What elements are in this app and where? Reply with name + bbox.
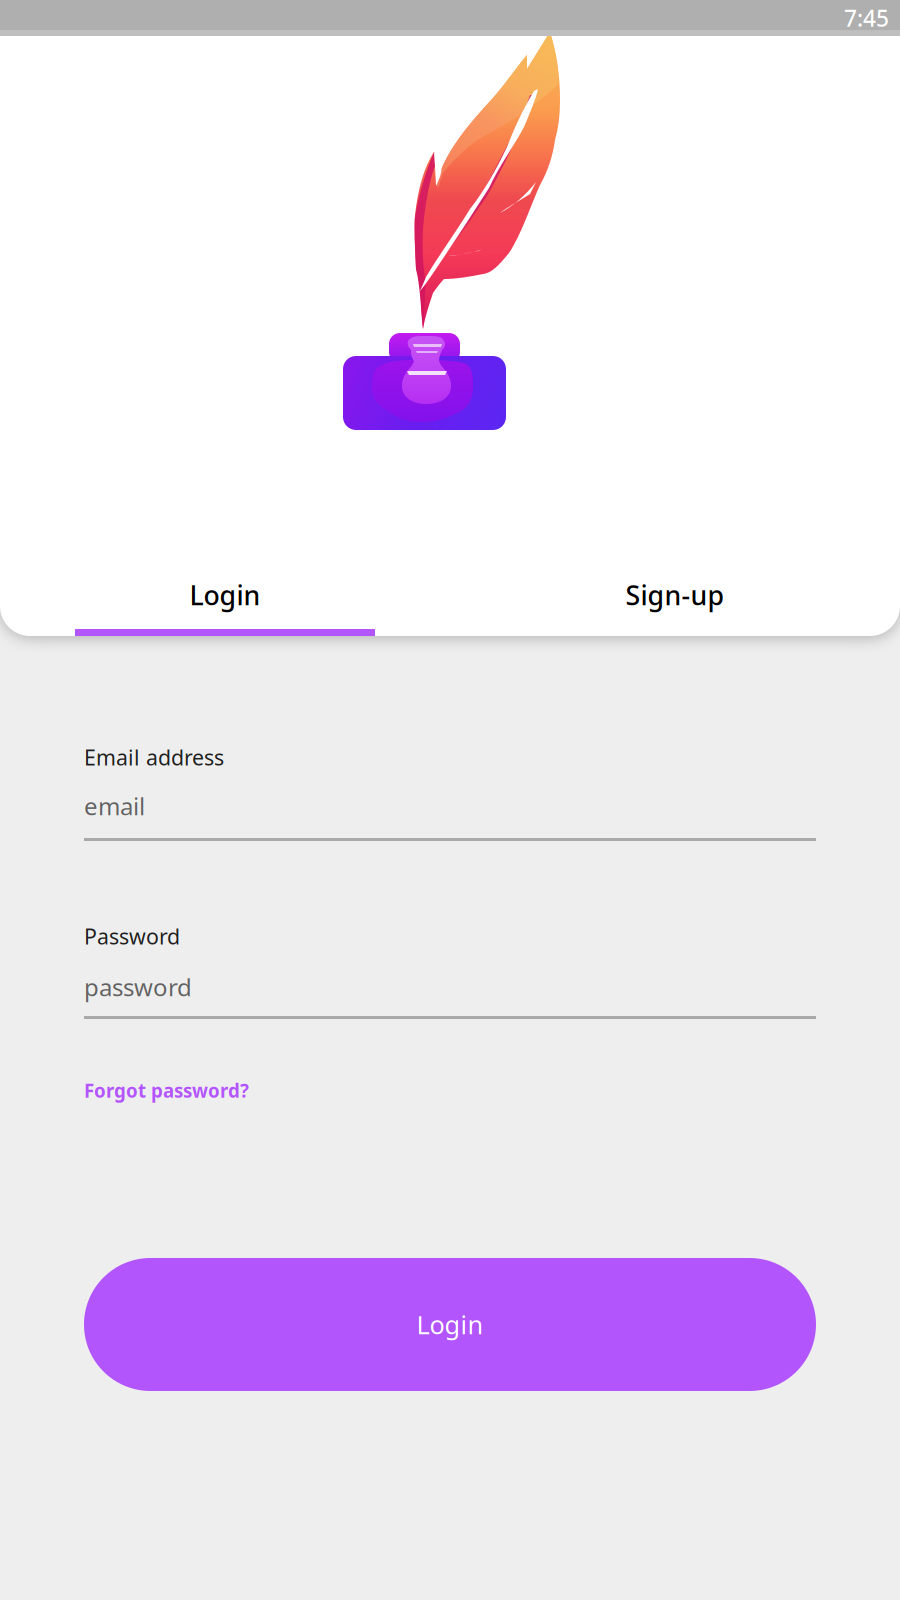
button[interactable]: Login <box>84 1258 816 1391</box>
staticText: 7:45 <box>844 3 889 33</box>
button[interactable]: Sign-up <box>450 516 900 636</box>
staticText: password <box>84 971 192 1003</box>
staticText: Email address <box>84 743 224 771</box>
button[interactable]: Forgot password? <box>84 1078 249 1103</box>
staticText: email <box>84 790 145 822</box>
button[interactable]: Login <box>0 516 450 636</box>
staticText: Forgot password? <box>84 1078 249 1103</box>
staticText: Sign-up <box>625 577 724 613</box>
staticText: Login <box>189 577 260 613</box>
staticText: Password <box>84 922 180 950</box>
staticText: Login <box>416 1308 483 1341</box>
